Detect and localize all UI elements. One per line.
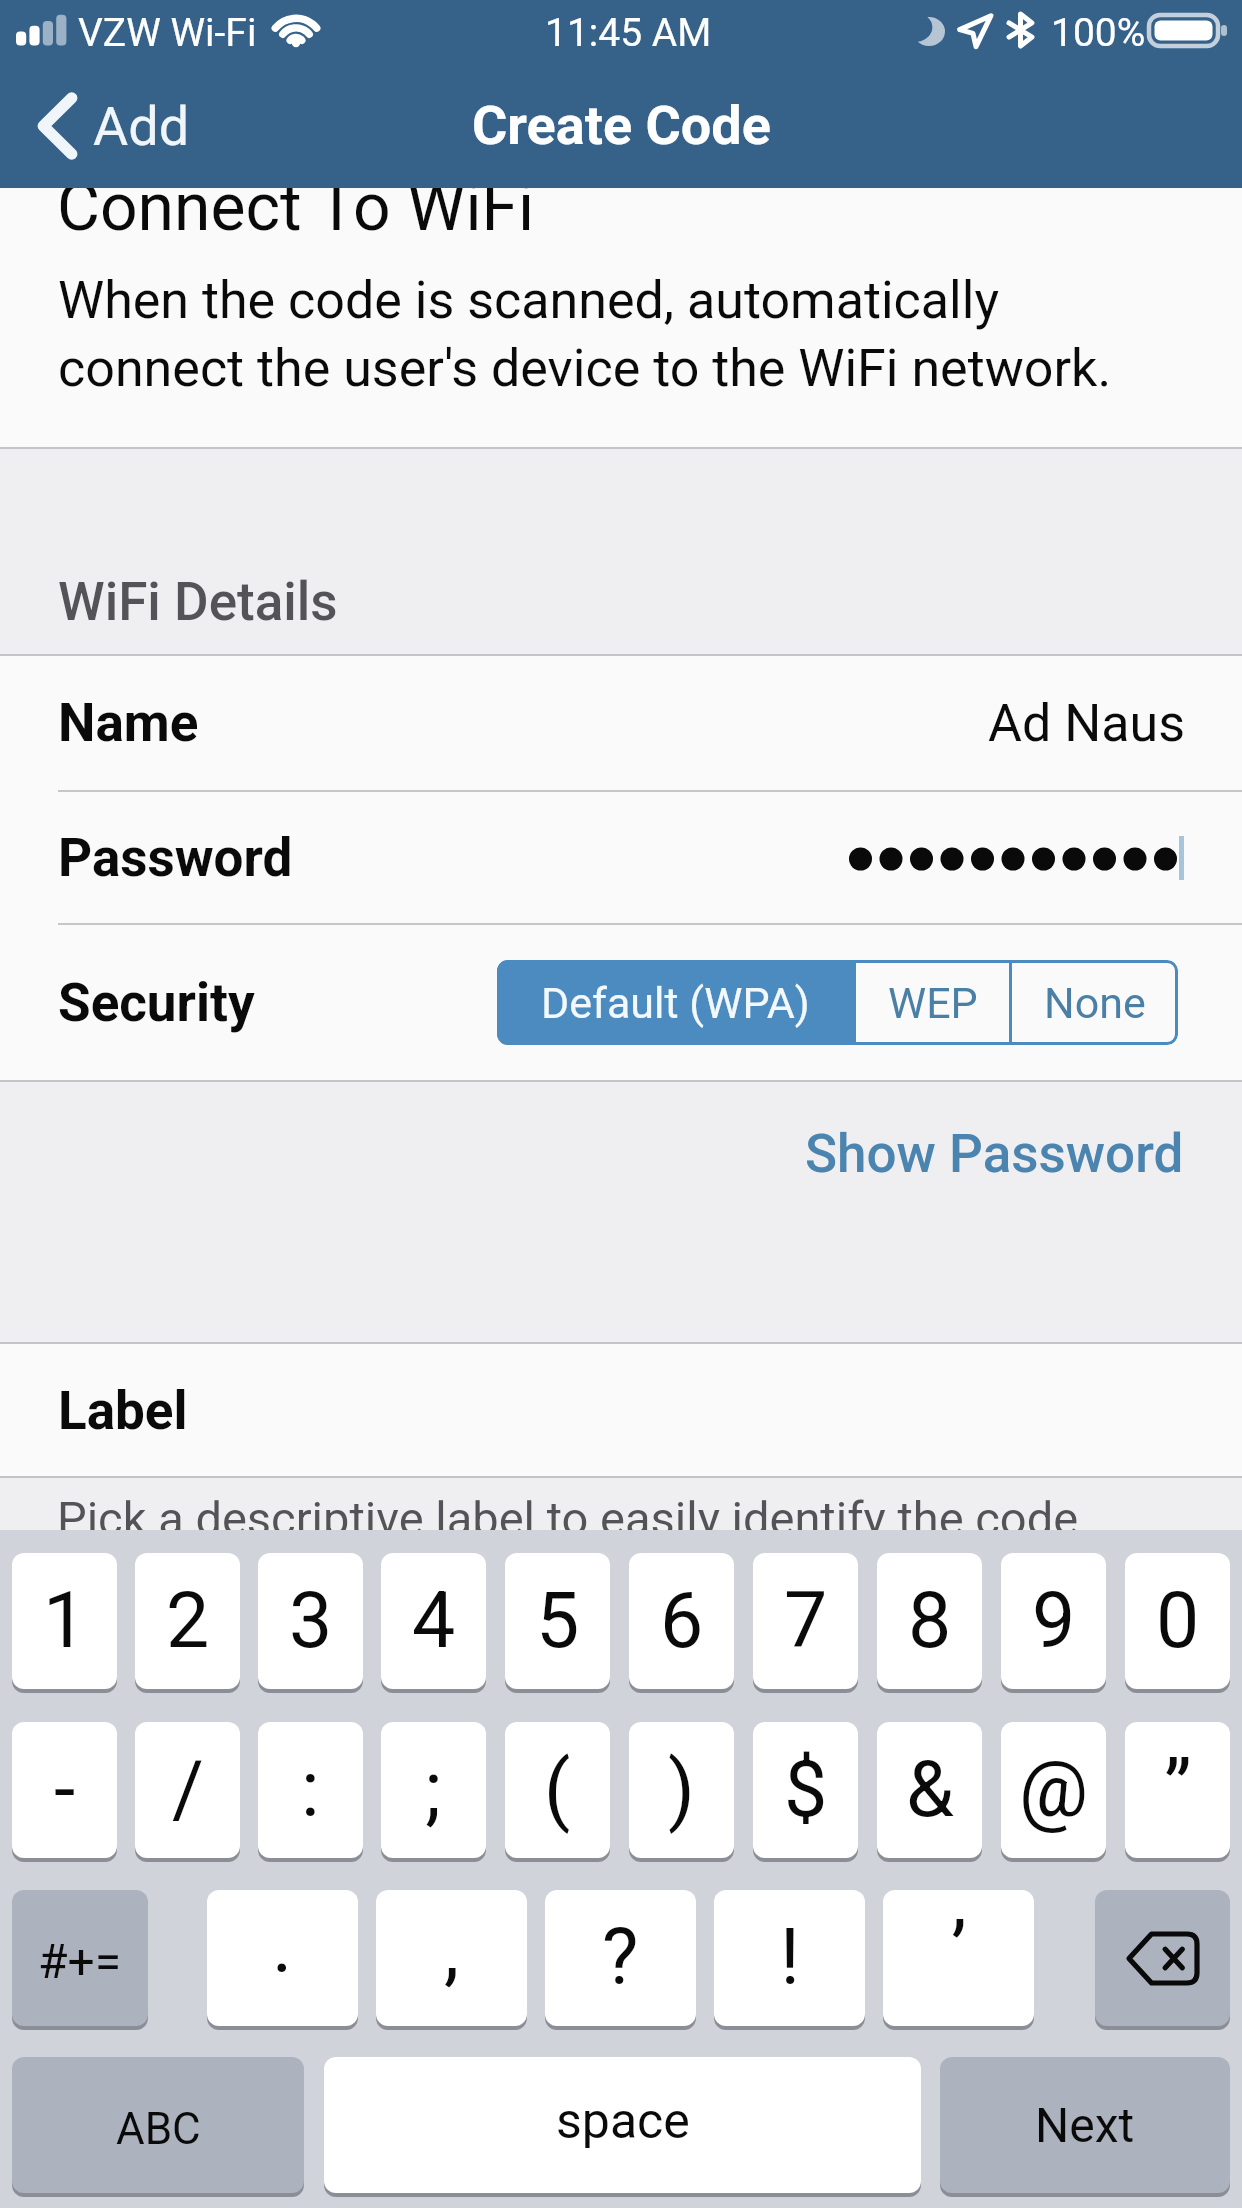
button[interactable]: !: [714, 1890, 865, 2026]
button[interactable]: $: [753, 1722, 858, 1858]
button[interactable]: ’: [883, 1890, 1034, 2026]
button[interactable]: 3: [258, 1553, 363, 1689]
staticText: $: [784, 1745, 828, 1835]
staticText: Next: [1035, 2097, 1135, 2153]
button[interactable]: 6: [629, 1553, 734, 1689]
staticText: WiFi Details: [58, 571, 338, 633]
button[interactable]: #+=: [12, 1890, 148, 2026]
button[interactable]: Name: [0, 656, 1242, 790]
button[interactable]: 5: [505, 1553, 610, 1689]
button[interactable]: ;: [381, 1722, 486, 1858]
staticText: 1: [43, 1576, 87, 1666]
staticText: -: [54, 1745, 76, 1835]
staticText: 5: [536, 1576, 580, 1666]
staticText: ;: [425, 1745, 442, 1835]
staticText: :: [301, 1745, 320, 1835]
staticText: Security: [58, 972, 255, 1034]
staticText: #+=: [38, 1933, 122, 1989]
staticText: 9: [1032, 1576, 1076, 1666]
staticText: VZW Wi-Fi: [78, 10, 257, 56]
staticText: 8: [908, 1576, 952, 1666]
staticText: &: [906, 1745, 954, 1835]
button[interactable]: None: [1012, 960, 1178, 1045]
staticText: /: [172, 1745, 204, 1835]
staticText: Create Code: [472, 94, 771, 157]
button[interactable]: 9: [1001, 1553, 1106, 1689]
staticText: ?: [602, 1913, 639, 2003]
button[interactable]: 2: [135, 1553, 240, 1689]
button[interactable]: ,: [376, 1890, 527, 2026]
button[interactable]: Backspace: [1095, 1890, 1230, 2026]
button[interactable]: ”: [1125, 1722, 1230, 1858]
staticText: (: [544, 1745, 571, 1835]
staticText: Connect To WiFi: [57, 169, 535, 246]
button[interactable]: ?: [545, 1890, 696, 2026]
button[interactable]: Next: [940, 2057, 1230, 2193]
staticText: .: [272, 1901, 293, 1991]
button[interactable]: @: [1001, 1722, 1106, 1858]
staticText: 0: [1156, 1576, 1200, 1666]
staticText: WEP: [888, 978, 978, 1028]
button[interactable]: 1: [12, 1553, 117, 1689]
button[interactable]: WEP: [856, 960, 1009, 1045]
button[interactable]: (: [505, 1722, 610, 1858]
button[interactable]: Back to Add: [35, 80, 190, 172]
button[interactable]: Default (WPA): [497, 960, 853, 1045]
button[interactable]: space: [324, 2057, 921, 2193]
staticText: 4: [412, 1576, 456, 1666]
staticText: Add: [93, 95, 190, 158]
button[interactable]: 7: [753, 1553, 858, 1689]
staticText: 3: [289, 1576, 333, 1666]
staticText: space: [556, 2092, 690, 2151]
staticText: ABC: [116, 2103, 201, 2155]
staticText: None: [1044, 978, 1146, 1028]
staticText: 2: [166, 1576, 210, 1666]
staticText: Name: [58, 692, 199, 754]
staticText: ’: [951, 1907, 967, 1997]
staticText: ,: [444, 1905, 460, 1995]
staticText: !: [780, 1913, 800, 2003]
staticText: Label: [58, 1380, 188, 1442]
staticText: 11:45 AM: [545, 10, 712, 56]
button[interactable]: /: [135, 1722, 240, 1858]
staticText: 100%: [1051, 10, 1146, 56]
button[interactable]: ): [629, 1722, 734, 1858]
button[interactable]: ABC: [12, 2057, 304, 2193]
staticText: 6: [660, 1576, 704, 1666]
staticText: Pick a descriptive label to easily ident…: [57, 1491, 1079, 1546]
button[interactable]: Label: [0, 1344, 1242, 1476]
button[interactable]: :: [258, 1722, 363, 1858]
staticText: ”: [1164, 1745, 1192, 1835]
staticText: 7: [784, 1576, 828, 1666]
staticText: @: [1019, 1745, 1089, 1835]
button[interactable]: Security: [0, 925, 1242, 1080]
staticText: Default (WPA): [541, 978, 810, 1028]
staticText: Password: [58, 827, 293, 889]
button[interactable]: 8: [877, 1553, 982, 1689]
staticText: Show Password: [805, 1123, 1184, 1185]
button[interactable]: 0: [1125, 1553, 1230, 1689]
button[interactable]: Password: [0, 792, 1242, 923]
staticText: Ad Naus: [988, 693, 1186, 754]
button[interactable]: .: [207, 1890, 358, 2026]
button[interactable]: &: [877, 1722, 982, 1858]
button[interactable]: -: [12, 1722, 117, 1858]
button[interactable]: Show Password: [765, 1082, 1242, 1213]
button[interactable]: 4: [381, 1553, 486, 1689]
staticText: When the code is scanned, automatically …: [58, 270, 1112, 399]
staticText: ): [668, 1745, 695, 1835]
